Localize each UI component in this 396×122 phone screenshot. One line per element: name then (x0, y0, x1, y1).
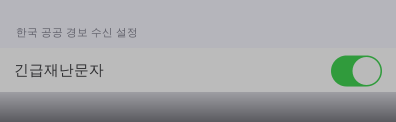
button[interactable]: 긴급재난문자 (0, 48, 396, 92)
staticText: 한국 공공 경보 수신 설정 (16, 26, 138, 39)
staticText: 긴급재난문자 (14, 61, 104, 79)
